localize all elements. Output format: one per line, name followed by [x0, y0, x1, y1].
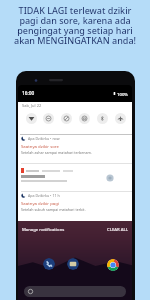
button[interactable]: CLEAR ALL	[107, 227, 128, 233]
staticText: Sab, Jul 22	[22, 103, 42, 108]
button[interactable]: Phone	[43, 258, 55, 270]
staticText: Setelah ashar sampai matahari terbenam.	[21, 150, 92, 155]
staticText: Saatnya dzikir pagi	[21, 200, 59, 206]
button[interactable]: Auto rotate	[61, 113, 72, 124]
button[interactable]: Battery saver	[79, 113, 90, 124]
staticText: 100%	[117, 91, 129, 97]
button[interactable]	[18, 165, 132, 190]
staticText: CLEAR ALL	[107, 227, 128, 233]
staticText: Manage notifications	[22, 227, 65, 233]
staticText: 16:00	[22, 90, 35, 97]
button[interactable]: Airplane mode	[115, 113, 126, 124]
button[interactable]: Do not disturb	[43, 113, 54, 124]
button[interactable]: Manage notifications	[22, 227, 65, 233]
button[interactable]: Apa Dzikirku • now	[21, 136, 129, 155]
staticText: TIDAK LAGI terlewat dzikir pagi dan sore…	[0, 4, 150, 47]
button[interactable]: Messages	[67, 258, 79, 270]
staticText: Apa Dzikirku • now	[28, 136, 60, 141]
button[interactable]: Search	[24, 286, 126, 297]
button[interactable]: Chrome	[107, 259, 119, 271]
button[interactable]: Wi-Fi	[26, 113, 37, 124]
staticText: Apa Dzikirku • 11 h	[28, 193, 60, 198]
button[interactable]: Bluetooth	[97, 113, 108, 124]
staticText: Saatnya dzikir sore	[21, 143, 59, 149]
button[interactable]: Apa Dzikirku • 11 h	[21, 193, 129, 212]
staticText: Setelah subuh sampai matahari terbit.	[21, 207, 86, 212]
